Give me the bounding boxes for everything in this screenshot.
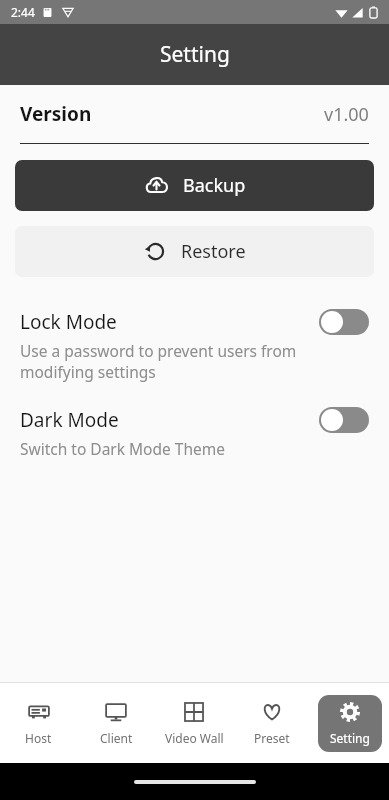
button[interactable]: Dark Mode toggle [319, 407, 369, 433]
staticText: 2:44 [11, 4, 35, 20]
staticText: Switch to Dark Mode Theme [20, 438, 225, 459]
staticText: Restore [181, 239, 246, 264]
button[interactable]: Preset [240, 695, 304, 752]
button[interactable]: Setting [318, 695, 382, 752]
staticText: Version [20, 101, 92, 127]
button[interactable]: Lock Mode toggle [319, 309, 369, 335]
staticText: v1.00 [324, 102, 369, 127]
button[interactable]: Backup [15, 160, 374, 211]
staticText: Backup [183, 173, 246, 198]
button[interactable]: Host [7, 695, 70, 752]
staticText: Use a password to prevent users from mod… [20, 340, 297, 383]
staticText: Client [100, 730, 133, 746]
staticText: Dark Mode [20, 407, 119, 433]
staticText: Setting [330, 730, 370, 746]
staticText: Lock Mode [20, 309, 117, 335]
staticText: Preset [254, 730, 290, 746]
button[interactable]: Client [84, 695, 148, 752]
staticText: Setting [160, 40, 230, 69]
staticText: Host [25, 730, 52, 746]
button[interactable]: Dark Mode [0, 407, 389, 459]
staticText: Video Wall [165, 730, 224, 746]
button[interactable]: Video Wall [162, 695, 226, 752]
button[interactable]: Lock Mode [0, 309, 389, 383]
button[interactable]: Restore [15, 226, 374, 277]
